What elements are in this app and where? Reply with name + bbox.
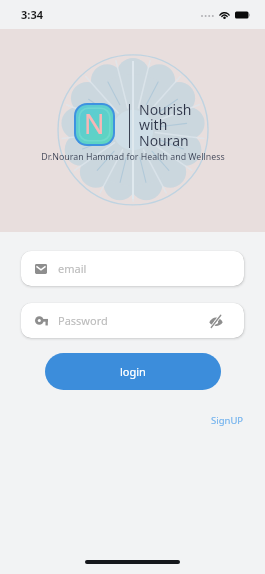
staticText: 3:34 bbox=[21, 7, 43, 22]
staticText: SignUP bbox=[211, 414, 244, 427]
staticText: login bbox=[120, 364, 146, 379]
button[interactable]: email bbox=[21, 251, 244, 286]
staticText: Dr.Nouran Hammad for Health and Wellness bbox=[41, 151, 225, 163]
staticText: Password bbox=[58, 313, 108, 328]
staticText: N bbox=[84, 105, 105, 142]
staticText: Nourish with Nouran bbox=[139, 100, 192, 150]
staticText: email bbox=[58, 261, 87, 276]
button[interactable]: Password bbox=[21, 303, 244, 338]
button[interactable]: login bbox=[45, 353, 221, 390]
button[interactable]: SignUP bbox=[207, 412, 248, 429]
button[interactable]: Show password bbox=[207, 312, 225, 330]
